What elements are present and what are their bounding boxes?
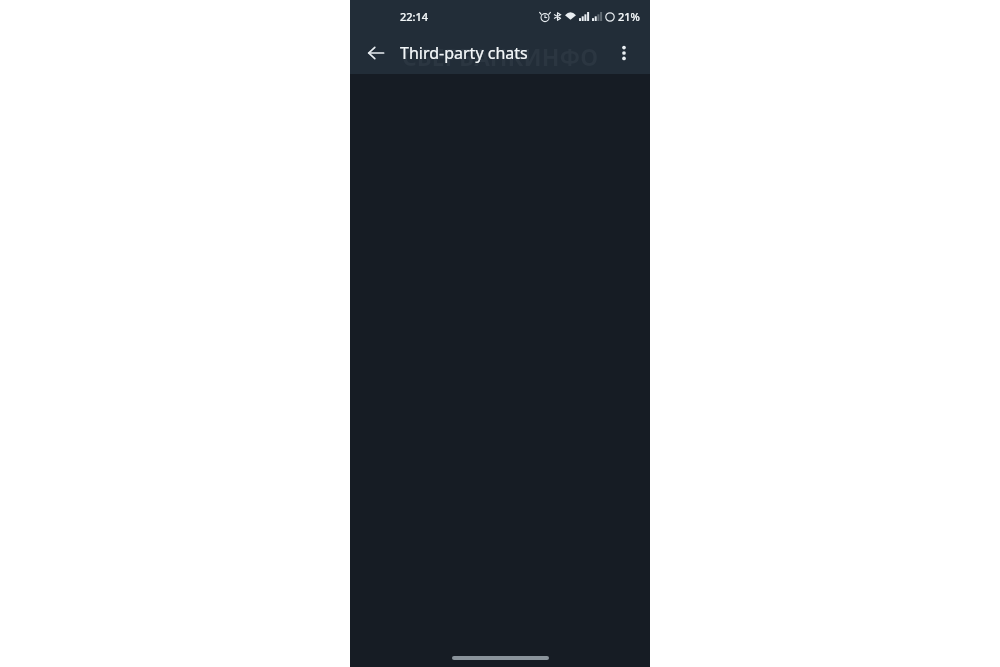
staticText: 21% [618, 9, 640, 24]
staticText: 22:14 [400, 9, 429, 24]
button[interactable]: Back [358, 35, 394, 71]
staticText: СБЕРБАНКИНФО [350, 41, 650, 72]
staticText: Third-party chats [400, 42, 606, 64]
button[interactable]: More options [606, 35, 642, 71]
